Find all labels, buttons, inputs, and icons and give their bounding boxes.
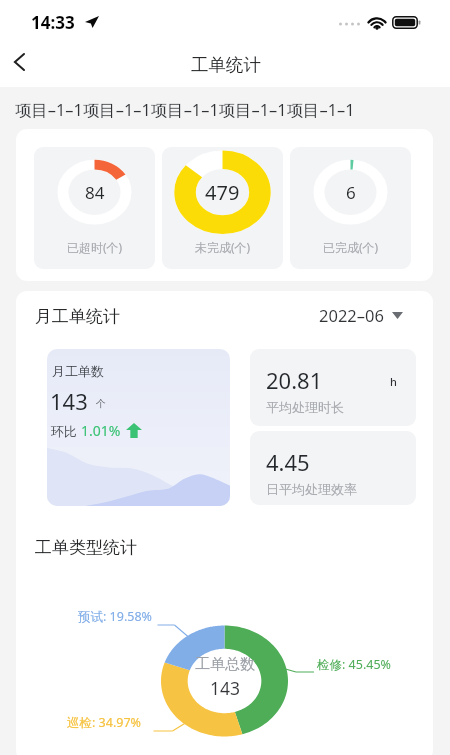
- staticText: 20.81: [266, 365, 323, 395]
- staticText: 月工单统计: [35, 306, 120, 327]
- staticText: 工单统计: [191, 54, 261, 76]
- staticText: 平均处理时长: [266, 399, 344, 415]
- staticText: 14:33: [31, 11, 75, 34]
- button[interactable]: 4.45: [250, 431, 416, 505]
- staticText: 工单总数: [195, 655, 255, 674]
- button[interactable]: 月工单数: [47, 349, 230, 506]
- staticText: h: [390, 374, 397, 389]
- staticText: 143: [50, 386, 88, 416]
- staticText: 84: [85, 181, 105, 204]
- staticText: 4.45: [266, 447, 310, 477]
- button[interactable]: 479: [162, 147, 283, 269]
- staticText: 检修: 45.45%: [317, 656, 391, 673]
- staticText: 预试: 19.58%: [78, 608, 152, 625]
- staticText: 月工单数: [52, 363, 104, 379]
- staticText: 项目–1–1项目–1–1项目–1–1项目–1–1项目–1–1: [15, 98, 355, 120]
- staticText: 已超时(个): [67, 239, 123, 255]
- staticText: 日平均处理效率: [266, 481, 357, 497]
- button[interactable]: 84: [34, 147, 155, 269]
- button[interactable]: 6: [290, 147, 411, 269]
- button[interactable]: Back: [0, 42, 44, 86]
- staticText: 环比: [51, 422, 81, 440]
- staticText: 143: [210, 676, 241, 700]
- staticText: 个: [96, 397, 106, 410]
- staticText: 已完成(个): [323, 239, 379, 255]
- staticText: 工单类型统计: [35, 537, 137, 558]
- staticText: 479: [205, 179, 240, 206]
- staticText: 未完成(个): [195, 239, 251, 255]
- staticText: 6: [346, 181, 356, 204]
- staticText: 2022–06: [319, 304, 384, 326]
- button[interactable]: 2022–06: [319, 304, 403, 326]
- button[interactable]: 20.81: [250, 349, 416, 426]
- staticText: 巡检: 34.97%: [67, 714, 141, 731]
- staticText: 1.01%: [81, 421, 121, 440]
